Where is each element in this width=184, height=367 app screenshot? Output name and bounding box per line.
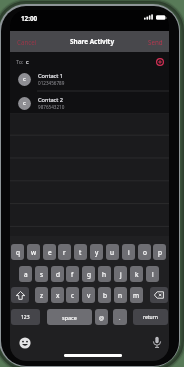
staticText: Cancel (17, 38, 47, 47)
staticText: Contact 1 (38, 72, 88, 80)
button[interactable]: return (133, 309, 168, 325)
button[interactable] (19, 337, 31, 349)
button[interactable]: b (98, 287, 111, 303)
staticText: . (119, 314, 121, 321)
button[interactable] (14, 35, 42, 48)
button[interactable] (156, 58, 164, 66)
button[interactable]: r (58, 244, 71, 260)
staticText: r (63, 248, 66, 257)
staticText: n (118, 291, 123, 300)
button[interactable]: e (43, 244, 56, 260)
button[interactable]: d (51, 266, 64, 282)
button[interactable]: s (35, 266, 48, 282)
button[interactable]: . (113, 309, 127, 325)
staticText: 123 (21, 314, 30, 321)
button[interactable]: n (114, 287, 127, 303)
staticText: Share Activity (57, 37, 127, 47)
staticText: z (40, 291, 44, 300)
button[interactable]: t (74, 244, 87, 260)
staticText: space (62, 314, 77, 321)
staticText: p (158, 248, 162, 257)
staticText: 12:00 (21, 14, 51, 23)
button[interactable]: z (35, 287, 48, 303)
button[interactable]: u (106, 244, 119, 260)
staticText: l (152, 270, 154, 279)
button[interactable]: p (153, 244, 166, 260)
staticText: c (26, 58, 34, 66)
staticText: 0123456789 (38, 80, 88, 87)
button[interactable]: k (130, 266, 143, 282)
button[interactable] (151, 336, 163, 349)
staticText: h (102, 270, 107, 279)
button[interactable]: m (130, 287, 143, 303)
staticText: 9876543210 (38, 104, 88, 111)
button[interactable]: v (82, 287, 95, 303)
staticText: Send (148, 38, 169, 47)
button[interactable] (10, 91, 169, 115)
staticText: e (48, 248, 52, 257)
staticText: d (56, 270, 60, 279)
staticText: i (128, 248, 130, 257)
staticText: j (120, 270, 122, 279)
button[interactable]: i (122, 244, 135, 260)
staticText: return (143, 314, 158, 321)
staticText: x (56, 291, 60, 300)
staticText: @ (99, 314, 104, 321)
button[interactable]: f (66, 266, 79, 282)
staticText: g (87, 270, 91, 279)
button[interactable] (10, 67, 169, 91)
staticText: b (103, 291, 107, 300)
staticText: m (133, 291, 140, 300)
button[interactable] (144, 35, 168, 48)
staticText: c (23, 99, 31, 108)
button[interactable]: q (11, 244, 24, 260)
button[interactable]: y (90, 244, 103, 260)
button[interactable]: a (19, 266, 32, 282)
staticText: s (40, 270, 44, 279)
staticText: t (79, 248, 82, 257)
button[interactable]: j (114, 266, 127, 282)
staticText: Contact 2 (38, 96, 88, 104)
staticText: k (135, 270, 139, 279)
button[interactable]: l (146, 266, 159, 282)
button[interactable]: o (138, 244, 151, 260)
button[interactable]: space (47, 309, 92, 325)
staticText: q (16, 248, 20, 257)
button[interactable]: x (51, 287, 64, 303)
staticText: a (24, 270, 28, 279)
staticText: w (31, 248, 37, 257)
staticText: f (71, 270, 74, 279)
button[interactable]: g (82, 266, 95, 282)
button[interactable]: h (98, 266, 111, 282)
button[interactable] (150, 287, 168, 303)
button[interactable]: c (66, 287, 79, 303)
staticText: To: (16, 58, 30, 66)
staticText: v (87, 291, 91, 300)
button[interactable]: @ (95, 309, 108, 325)
staticText: o (143, 248, 147, 257)
button[interactable]: w (27, 244, 40, 260)
staticText: c (71, 291, 75, 300)
staticText: y (95, 248, 99, 257)
staticText: u (110, 248, 115, 257)
staticText: c (23, 75, 31, 84)
button[interactable]: 123 (11, 309, 40, 325)
button[interactable] (11, 287, 29, 303)
